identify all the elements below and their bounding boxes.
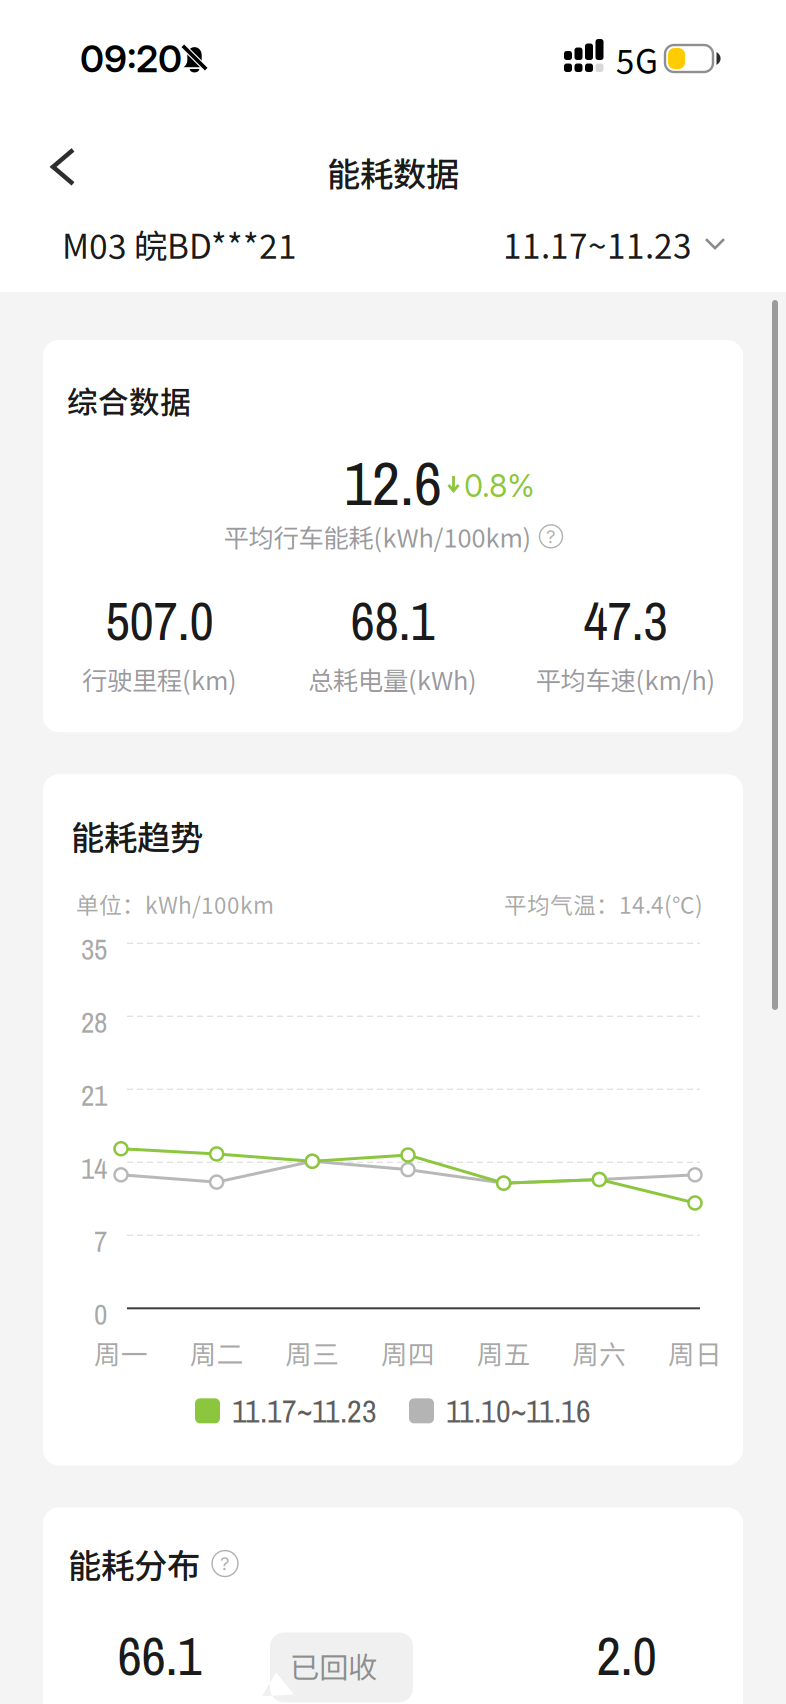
staticText: 平均行车能耗(kWh/100km) [223,518,531,555]
staticText: 09:20 [80,36,182,81]
staticText: M03 皖BD***21 [62,220,297,268]
staticText: 507.0 [105,585,213,656]
staticText: ? [546,525,556,548]
staticText: 平均车速(km/h) [535,660,715,697]
staticText: 11.17~11.23 [503,220,692,268]
staticText: 已回收 [290,1644,377,1687]
staticText: 47.3 [583,585,667,656]
staticText: 周四 [381,1333,435,1372]
staticText: 周二 [190,1333,244,1372]
staticText: 12.6 [344,441,442,524]
staticText: 11.10~11.16 [446,1389,591,1432]
staticText: 14 [81,1148,107,1188]
staticText: 28 [81,1002,107,1042]
staticText: 总耗电量(kWh) [308,660,477,697]
staticText: 能耗趋势 [71,811,203,859]
staticText: 单位：kWh/100km [76,887,274,920]
staticText: 行驶里程(km) [82,660,237,697]
staticText: 11.17~11.23 [232,1389,377,1432]
staticText: 68.1 [350,585,434,656]
staticText: 平均气温：14.4(℃) [504,887,703,920]
staticText: 周五 [477,1333,531,1372]
staticText: ? [220,1552,230,1575]
staticText: 0 [94,1294,107,1334]
staticText: 0.8% [464,467,535,504]
staticText: 35 [81,929,107,969]
staticText: 5G [616,35,658,83]
button[interactable]: Back [0,110,100,194]
button[interactable]: 11.17~11.23 [503,200,786,288]
staticText: 综合数据 [67,378,191,422]
staticText: 21 [81,1075,107,1115]
staticText: 周日 [668,1333,722,1372]
staticText: 周六 [572,1333,626,1372]
staticText: 周一 [94,1333,148,1372]
staticText: 66.1 [117,1620,201,1691]
staticText: 周三 [285,1333,339,1372]
staticText: 能耗分布 [68,1539,200,1588]
staticText: 2.0 [596,1620,656,1691]
staticText: 能耗数据 [327,148,459,196]
staticText: 7 [94,1221,107,1261]
